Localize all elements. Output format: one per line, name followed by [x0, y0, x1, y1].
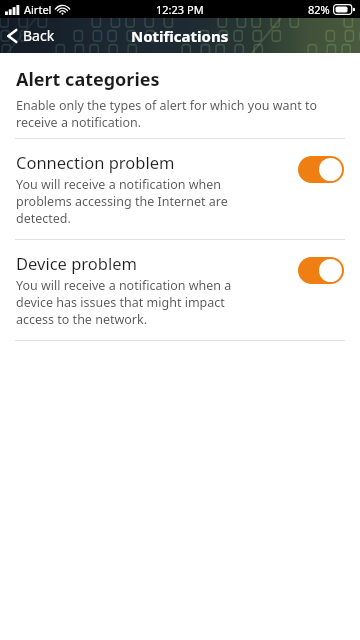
staticText: Device problem: [16, 252, 137, 274]
staticText: Back: [23, 26, 55, 45]
staticText: Airtel: [24, 2, 52, 17]
staticText: 82%: [308, 2, 330, 17]
staticText: Enable only the types of alert for which…: [16, 97, 344, 131]
button[interactable]: Connection problem: [0, 139, 360, 239]
button[interactable]: Toggle Device problem: [298, 257, 344, 284]
staticText: Notifications: [131, 26, 229, 46]
staticText: Connection problem: [16, 151, 175, 173]
staticText: You will receive a notification when a d…: [16, 277, 266, 328]
staticText: You will receive a notification when pro…: [16, 176, 266, 227]
staticText: Alert categories: [16, 67, 160, 92]
button[interactable]: Device problem: [0, 240, 360, 340]
button[interactable]: Toggle Connection problem: [298, 156, 344, 183]
staticText: 12:23 PM: [156, 2, 204, 17]
button[interactable]: Back: [0, 22, 65, 49]
